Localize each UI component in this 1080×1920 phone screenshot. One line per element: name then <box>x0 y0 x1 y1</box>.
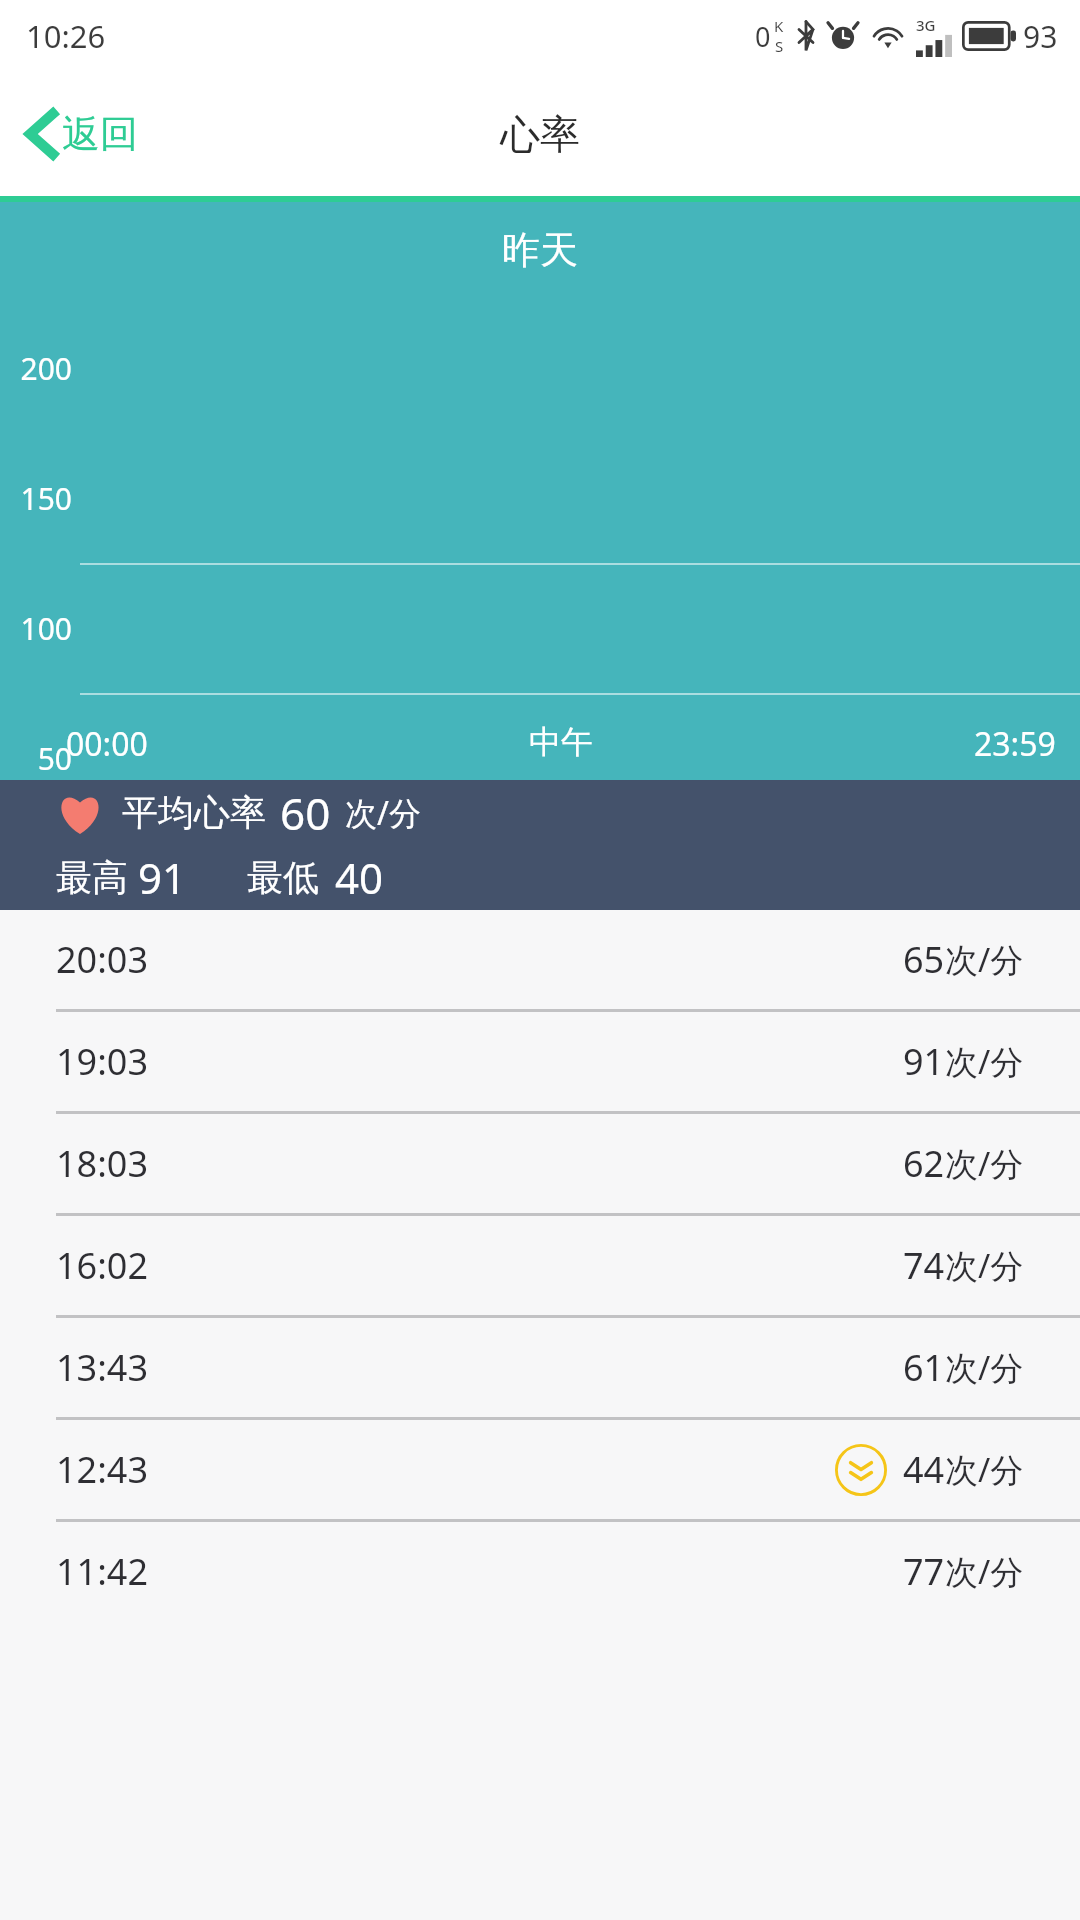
staticText: 61 <box>903 1343 945 1392</box>
staticText: 次/分 <box>945 1549 1024 1594</box>
staticText: 次/分 <box>945 1039 1024 1084</box>
staticText: 最低 <box>247 855 319 900</box>
staticText: 77 <box>903 1547 945 1596</box>
staticText: 40 <box>335 849 384 906</box>
button[interactable]: 12:43 <box>0 1420 1080 1519</box>
staticText: 次/分 <box>945 1447 1024 1492</box>
staticText: 心率 <box>500 109 580 159</box>
staticText: 19:03 <box>56 1037 149 1086</box>
button[interactable]: 18:03 <box>0 1114 1080 1213</box>
button[interactable]: 20:03 <box>0 910 1080 1009</box>
staticText: 次/分 <box>945 1243 1024 1288</box>
staticText: K <box>774 16 784 36</box>
staticText: 18:03 <box>56 1139 149 1188</box>
staticText: 12:43 <box>56 1445 149 1494</box>
other: 低心率提示 <box>835 1444 887 1496</box>
staticText: 0 <box>755 18 771 55</box>
button[interactable]: 19:03 <box>0 1012 1080 1111</box>
staticText: 93 <box>1023 16 1058 57</box>
staticText: 100 <box>8 608 72 649</box>
staticText: 60 <box>280 783 331 843</box>
staticText: 11:42 <box>56 1547 149 1596</box>
button[interactable]: 返回 <box>18 102 144 166</box>
staticText: 16:02 <box>56 1241 149 1290</box>
staticText: 返回 <box>62 110 138 158</box>
staticText: 50 <box>8 738 72 779</box>
staticText: 20:03 <box>56 935 149 984</box>
staticText: 200 <box>8 348 72 389</box>
button[interactable]: 13:43 <box>0 1318 1080 1417</box>
staticText: 中午 <box>529 722 593 762</box>
staticText: 最高 <box>56 855 128 900</box>
staticText: 91 <box>138 849 187 906</box>
staticText: 23:59 <box>974 722 1056 766</box>
staticText: 次/分 <box>945 1141 1024 1186</box>
staticText: 次/分 <box>945 937 1024 982</box>
staticText: 74 <box>903 1241 945 1290</box>
button[interactable]: 16:02 <box>0 1216 1080 1315</box>
staticText: 62 <box>903 1139 945 1188</box>
staticText: 150 <box>8 478 72 519</box>
staticText: 13:43 <box>56 1343 149 1392</box>
staticText: 平均心率 <box>122 790 266 835</box>
staticText: 昨天 <box>502 226 578 274</box>
staticText: 次/分 <box>945 1345 1024 1390</box>
staticText: S <box>775 36 784 56</box>
staticText: 10:26 <box>26 15 106 57</box>
staticText: 65 <box>903 935 945 984</box>
button[interactable]: 11:42 <box>0 1522 1080 1621</box>
staticText: 次/分 <box>345 791 421 835</box>
staticText: 00:00 <box>66 722 148 766</box>
staticText: 44 <box>903 1445 945 1494</box>
staticText: 91 <box>903 1037 945 1086</box>
staticText: 3G <box>916 15 936 35</box>
